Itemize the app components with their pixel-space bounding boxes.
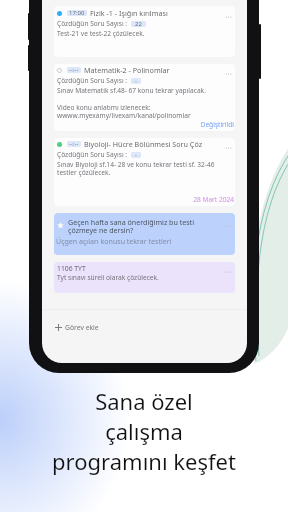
staticText: 1106 TYT	[57, 264, 86, 273]
staticText: wwww.myexamy/livexam/kanal/polinomlar	[57, 111, 191, 120]
staticText: Sınav Matematik sf.48- 67 konu tekrar ya…	[57, 86, 206, 95]
staticText: Sana özel	[95, 386, 193, 416]
button[interactable]: More options	[220, 67, 234, 81]
staticText: Geçen hafta sana önerdiğimiz bu testi	[68, 217, 195, 227]
staticText: Fizik -1 - Işığın kırılması	[90, 8, 168, 18]
staticText: Biyoloji- Hücre Bölünmesi Soru Çöz	[84, 139, 203, 149]
staticText: Sınav Biyoloji sf.14- 28 ve konu tekrar …	[57, 160, 215, 169]
button[interactable]: More options	[220, 219, 234, 233]
button[interactable]: More options	[220, 141, 234, 155]
button[interactable]: --:--	[54, 138, 235, 206]
staticText: 17:00	[69, 10, 85, 16]
staticText: Görev ekle	[65, 323, 99, 332]
staticText: -	[135, 152, 137, 158]
staticText: Matematik-2 - Polinomlar	[84, 65, 170, 75]
staticText: çalışma	[105, 416, 183, 446]
button[interactable]: 1106 TYT	[54, 262, 235, 293]
staticText: Video konu anlatımı izlenecek:	[57, 103, 151, 112]
staticText: çözmeye ne dersin?	[68, 225, 134, 235]
staticText: -	[135, 78, 137, 84]
staticText: Test-21 ve test-22 çözülecek.	[57, 29, 145, 38]
staticText: programını keşfet	[52, 446, 236, 476]
staticText: Çözdüğün Soru Sayısı :	[57, 76, 128, 85]
staticText: Çözdüğün Soru Sayısı :	[57, 19, 128, 28]
button[interactable]: 17:00	[54, 6, 235, 57]
staticText: testler çözülecek.	[57, 168, 111, 177]
button[interactable]: Geçen hafta sana önerdiğimiz bu testi	[54, 213, 235, 255]
staticText: Tyt sınavı süreli olarak çözülecek.	[57, 273, 159, 282]
staticText: 22	[135, 21, 142, 27]
button[interactable]: Görev ekle	[42, 310, 247, 344]
staticText: --:--	[69, 67, 79, 73]
staticText: Üçgen açıları konusu tekrar testleri	[56, 236, 172, 246]
button[interactable]: --:--	[54, 64, 235, 131]
staticText: Değiştirildi	[57, 120, 234, 129]
button[interactable]: More options	[220, 265, 234, 279]
staticText: Çözdüğün Soru Sayısı :	[57, 150, 128, 159]
staticText: 28 Mart 2024	[57, 195, 234, 204]
staticText: --:--	[69, 141, 79, 147]
button[interactable]: More options	[220, 10, 234, 24]
